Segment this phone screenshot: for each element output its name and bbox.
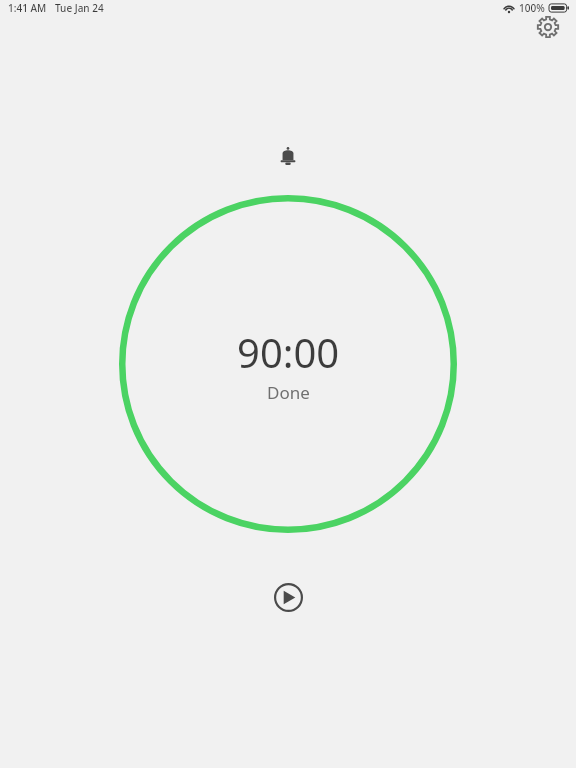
staticText: Tue Jan 24 — [55, 1, 104, 15]
staticText: 1:41 AM — [8, 1, 47, 15]
staticText: 100% — [519, 1, 545, 15]
staticText: 90:00 — [237, 325, 340, 379]
button[interactable]: Settings — [533, 12, 562, 41]
button[interactable]: Alarm — [271, 139, 305, 173]
button[interactable]: Start timer — [269, 578, 307, 616]
button[interactable]: 90:00 — [119, 195, 457, 533]
staticText: Done — [267, 381, 310, 404]
